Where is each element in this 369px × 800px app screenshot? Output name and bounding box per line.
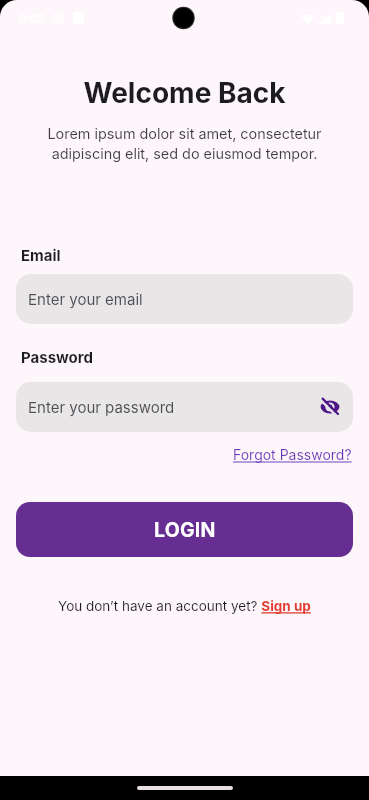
staticText: Password <box>21 348 93 366</box>
button[interactable]: Forgot Password? <box>233 446 352 463</box>
button[interactable] <box>318 395 342 419</box>
staticText: Welcome Back <box>0 76 369 110</box>
staticText: Email <box>21 246 61 264</box>
staticText: Lorem ipsum dolor sit amet, consectetur … <box>0 125 369 162</box>
button[interactable]: You don’t have an account yet? Sign up <box>58 598 311 614</box>
button[interactable]: Enter your email <box>16 274 353 324</box>
staticText: 9:02 <box>19 11 46 26</box>
staticText: LOGIN <box>154 518 216 542</box>
button[interactable]: LOGIN <box>16 502 353 557</box>
staticText: Enter your email <box>28 290 143 308</box>
staticText: Enter your password <box>28 398 175 416</box>
button[interactable]: Enter your password <box>16 382 353 432</box>
